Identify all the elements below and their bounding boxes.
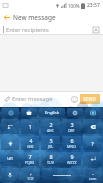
staticText: SEND bbox=[83, 96, 97, 103]
staticText: MNO bbox=[67, 144, 76, 149]
staticText: . bbox=[92, 169, 94, 176]
staticText: !#1 bbox=[7, 156, 14, 162]
button[interactable]: 3 bbox=[62, 119, 81, 134]
button[interactable] bbox=[21, 108, 37, 117]
staticText: 1 bbox=[28, 123, 32, 130]
button[interactable]: Attach bbox=[2, 94, 12, 104]
button[interactable]: . bbox=[83, 168, 102, 182]
button[interactable]: Enter recipients bbox=[0, 24, 103, 35]
button[interactable]: backspace bbox=[83, 119, 102, 134]
staticText: 4 bbox=[29, 137, 33, 144]
button[interactable]: space bbox=[42, 168, 81, 182]
staticText: 7 bbox=[28, 153, 32, 160]
staticText: 9 bbox=[70, 153, 74, 160]
button[interactable]: 4 bbox=[21, 136, 39, 150]
staticText: TUV bbox=[47, 160, 54, 165]
button[interactable]: mic bbox=[1, 168, 19, 182]
button[interactable]: shift bbox=[1, 136, 19, 150]
button[interactable]: enter bbox=[83, 152, 102, 166]
staticText: Enter recipients bbox=[6, 26, 49, 34]
staticText: 23:57 bbox=[87, 2, 100, 9]
staticText: GHI bbox=[27, 144, 34, 149]
button[interactable]: 5 bbox=[41, 136, 60, 150]
staticText: ABC bbox=[47, 128, 54, 133]
button[interactable]: 7 bbox=[21, 152, 39, 166]
button[interactable]: Emoji bbox=[69, 94, 80, 105]
button[interactable]: SEND bbox=[80, 94, 100, 104]
staticText: WXYZ bbox=[67, 160, 77, 165]
button[interactable]: 6 bbox=[62, 136, 81, 150]
staticText: English bbox=[45, 110, 60, 116]
staticText: 3 bbox=[70, 121, 74, 128]
staticText: JKL bbox=[48, 144, 54, 149]
staticText: 5 bbox=[49, 137, 53, 144]
button[interactable] bbox=[85, 108, 101, 117]
button[interactable]: Contacts bbox=[91, 25, 100, 34]
button[interactable]: sym bbox=[1, 152, 19, 166]
button[interactable]: English bbox=[39, 108, 65, 117]
staticText: Enter message bbox=[12, 95, 53, 103]
button[interactable]: 8 bbox=[41, 152, 60, 166]
button[interactable]: Back bbox=[0, 11, 13, 24]
button[interactable]: , bbox=[21, 168, 40, 182]
button[interactable]: 9 bbox=[62, 152, 81, 166]
staticText: 8 bbox=[49, 153, 53, 160]
staticText: ? bbox=[91, 140, 94, 147]
staticText: 1/2! bbox=[27, 176, 34, 181]
button[interactable]: 2 bbox=[41, 119, 60, 134]
staticText: DEF bbox=[68, 128, 75, 133]
staticText: com bbox=[89, 176, 97, 181]
staticText: , bbox=[30, 169, 32, 176]
staticText: 2 bbox=[49, 121, 53, 128]
button[interactable]: tab bbox=[1, 119, 19, 134]
staticText: PQRS bbox=[25, 160, 35, 165]
staticText: 100% bbox=[68, 3, 80, 9]
button[interactable]: 1 bbox=[21, 119, 39, 134]
button[interactable] bbox=[2, 108, 19, 117]
staticText: New message bbox=[13, 13, 56, 22]
button[interactable] bbox=[67, 108, 83, 117]
button[interactable]: ? bbox=[83, 136, 102, 150]
staticText: 6 bbox=[70, 137, 74, 144]
